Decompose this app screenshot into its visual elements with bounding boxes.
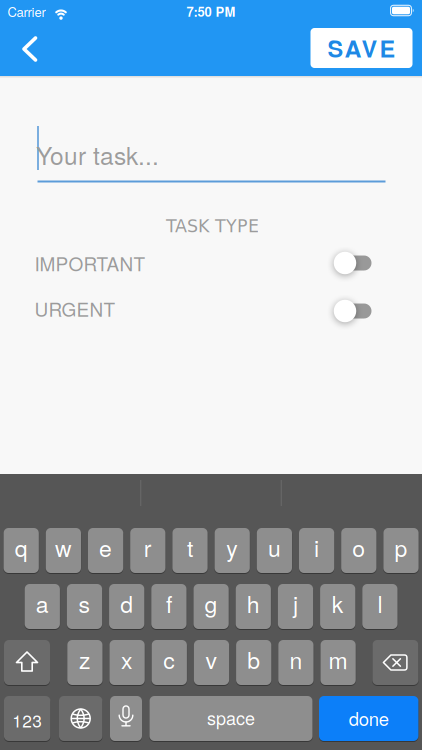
button[interactable]: c <box>152 640 187 685</box>
staticText: g <box>205 586 218 619</box>
button[interactable]: a <box>25 584 60 629</box>
staticText: v <box>205 642 217 675</box>
button[interactable]: SAVE <box>310 28 412 68</box>
staticText: l <box>377 586 382 619</box>
button[interactable]: z <box>67 640 102 685</box>
button[interactable]: k <box>320 584 355 629</box>
button[interactable]: e <box>88 528 123 573</box>
staticText: space <box>207 705 255 730</box>
button[interactable]: Important <box>334 249 373 276</box>
staticText: r <box>144 530 152 563</box>
button[interactable]: Urgent <box>334 297 373 324</box>
staticText: e <box>99 530 112 563</box>
staticText: s <box>78 586 90 619</box>
button[interactable]: y <box>215 528 250 573</box>
button[interactable]: u <box>257 528 292 573</box>
staticText: o <box>352 530 365 563</box>
button[interactable]: r <box>130 528 165 573</box>
button[interactable]: Shift <box>4 640 50 685</box>
staticText: IMPORTANT <box>34 249 145 277</box>
button[interactable]: m <box>320 640 356 685</box>
button[interactable]: o <box>341 528 376 573</box>
button[interactable]: Delete <box>372 640 418 685</box>
button[interactable]: i <box>299 528 334 573</box>
button[interactable]: Dictate <box>110 696 142 741</box>
staticText: Carrier <box>7 2 45 21</box>
button[interactable]: 123 <box>4 696 50 741</box>
button[interactable]: g <box>193 584 229 629</box>
staticText: z <box>79 642 91 675</box>
staticText: b <box>247 642 260 675</box>
staticText: a <box>36 586 49 619</box>
button[interactable]: f <box>151 584 186 629</box>
staticText: TASK TYPE <box>166 216 259 236</box>
button[interactable]: s <box>67 584 102 629</box>
button[interactable]: n <box>278 640 313 685</box>
staticText: m <box>329 642 348 675</box>
staticText: d <box>120 586 133 619</box>
button[interactable]: done <box>319 696 418 741</box>
staticText: i <box>314 530 319 563</box>
button[interactable]: j <box>278 584 313 629</box>
button[interactable]: l <box>362 584 397 629</box>
staticText: t <box>187 530 193 563</box>
staticText: SAVE <box>327 31 395 65</box>
button[interactable]: x <box>109 640 145 685</box>
staticText: f <box>166 586 172 619</box>
staticText: n <box>289 642 302 675</box>
staticText: done <box>349 705 389 731</box>
staticText: URGENT <box>34 295 115 322</box>
staticText: Your task... <box>36 137 159 172</box>
staticText: j <box>293 586 298 619</box>
staticText: x <box>121 642 133 675</box>
button[interactable]: w <box>46 528 81 573</box>
button[interactable]: Your task... <box>36 125 385 183</box>
button[interactable]: t <box>172 528 208 573</box>
button[interactable]: d <box>109 584 144 629</box>
button[interactable]: h <box>236 584 271 629</box>
button[interactable]: p <box>383 528 419 573</box>
button[interactable]: Next keyboard <box>59 696 102 741</box>
staticText: y <box>226 530 238 563</box>
staticText: q <box>15 530 28 563</box>
staticText: p <box>394 530 407 563</box>
button[interactable]: v <box>194 640 229 685</box>
staticText: k <box>332 586 344 619</box>
staticText: 7:50 PM <box>186 2 235 21</box>
button[interactable]: b <box>236 640 271 685</box>
staticText: c <box>163 642 175 675</box>
staticText: w <box>55 530 72 563</box>
button[interactable]: space <box>149 696 312 741</box>
button[interactable]: q <box>4 528 39 573</box>
staticText: u <box>268 530 281 563</box>
staticText: h <box>247 586 260 619</box>
staticText: 123 <box>12 708 42 732</box>
button[interactable]: Back <box>20 35 40 63</box>
